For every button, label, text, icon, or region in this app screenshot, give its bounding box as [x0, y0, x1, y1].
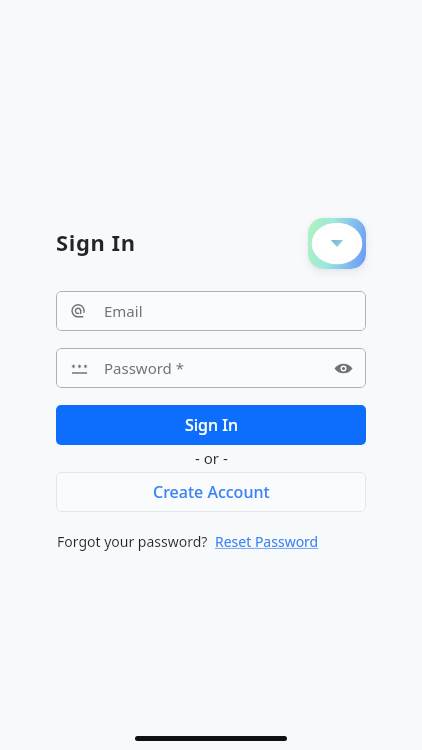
staticText: Forgot your password?: [57, 532, 208, 551]
button[interactable]: Reset Password: [215, 532, 319, 551]
button[interactable]: Sign In: [56, 405, 366, 445]
button[interactable]: Create Account: [56, 472, 366, 512]
staticText: Sign In: [56, 227, 136, 257]
staticText: Password *: [104, 358, 185, 378]
button[interactable]: App logo: [308, 218, 366, 269]
staticText: Create Account: [153, 481, 270, 503]
staticText: - or -: [195, 448, 228, 466]
staticText: Sign In: [185, 414, 238, 436]
button[interactable]: Password *: [56, 348, 366, 388]
staticText: Reset Password: [215, 532, 319, 551]
staticText: Email: [104, 301, 143, 321]
button[interactable]: Email: [56, 291, 366, 331]
button[interactable]: Show password: [334, 359, 353, 378]
